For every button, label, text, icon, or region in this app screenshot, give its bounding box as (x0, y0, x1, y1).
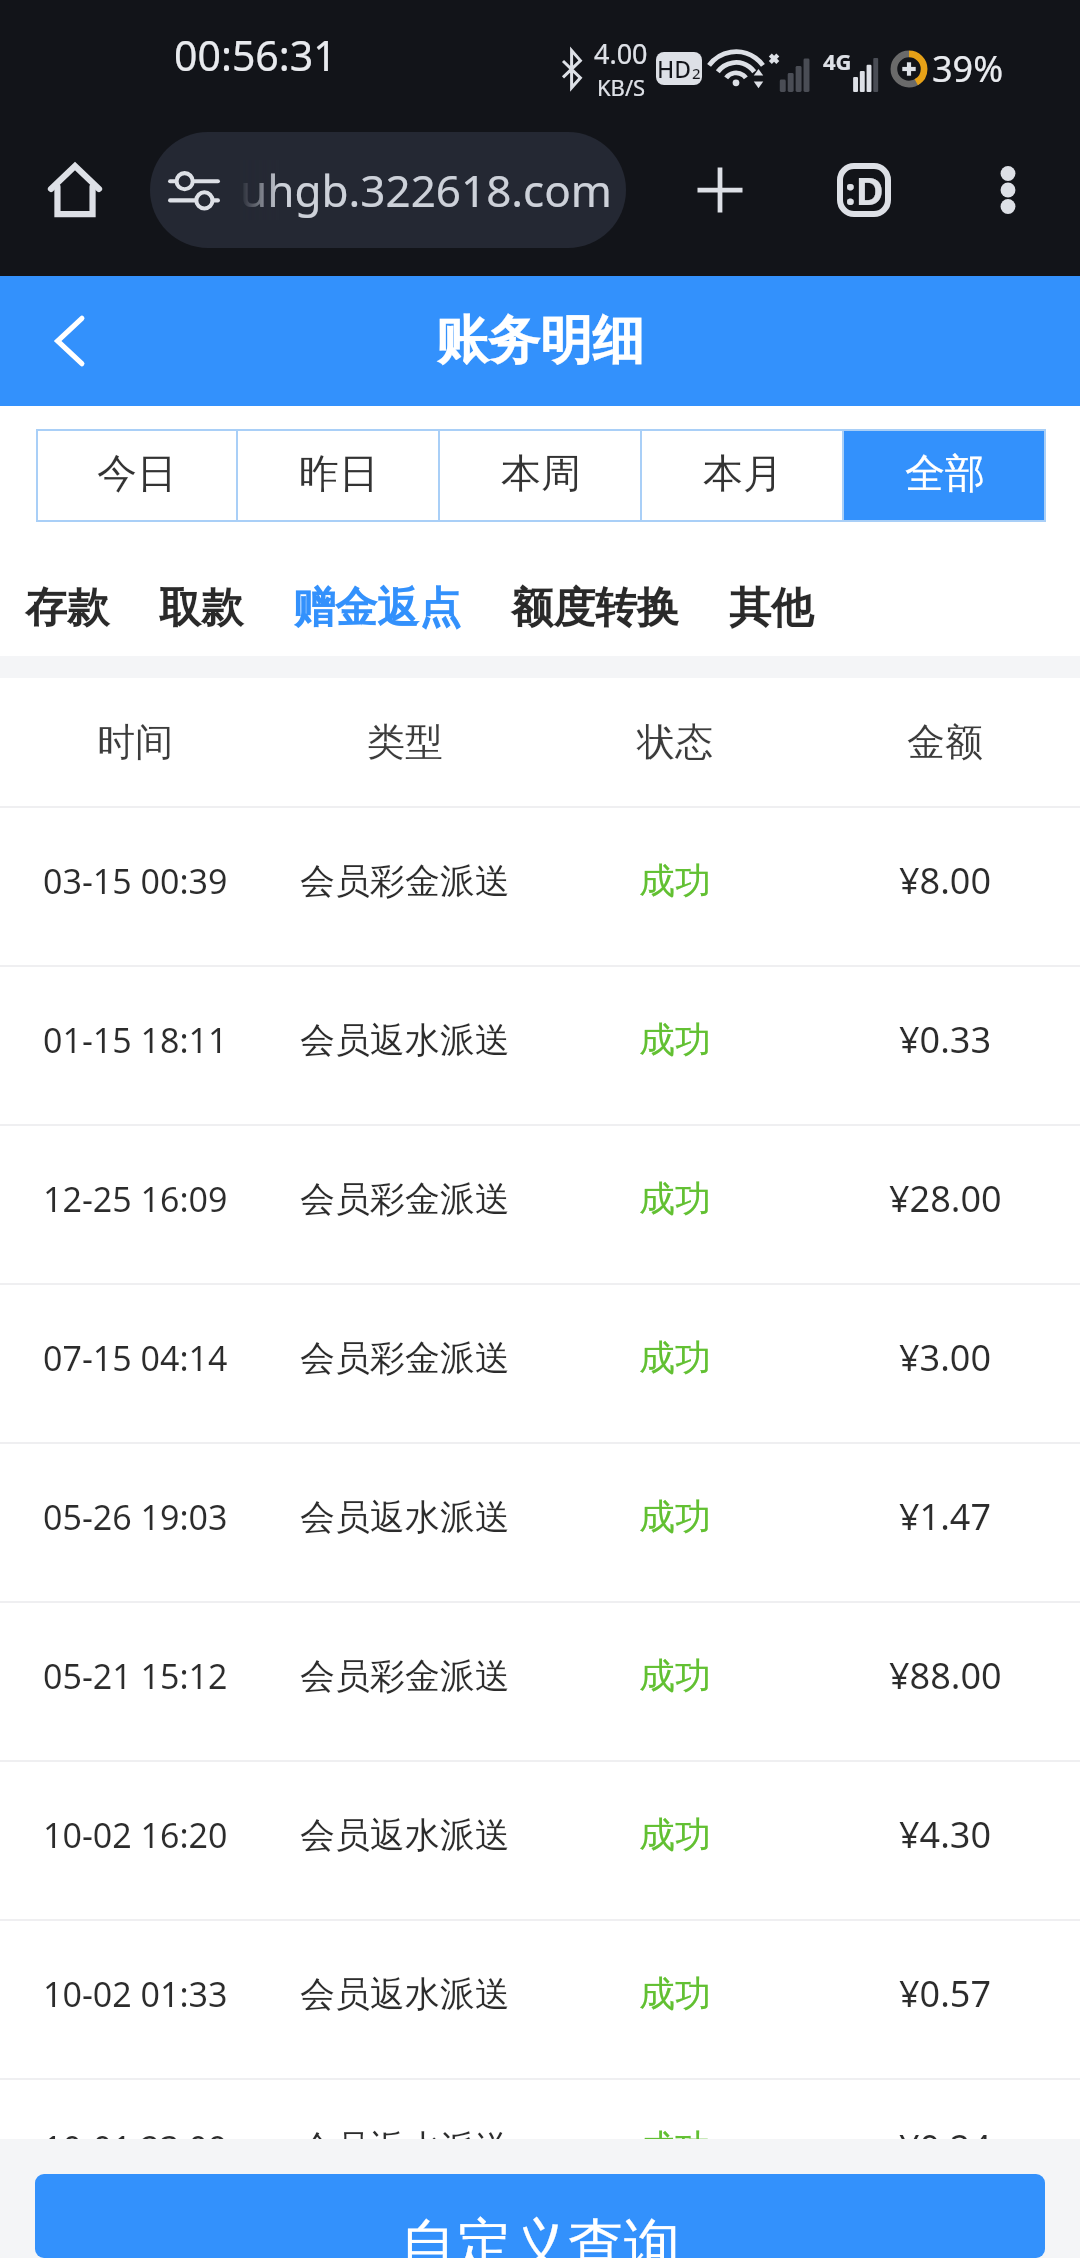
button[interactable]: uhgb.322618.com (150, 132, 626, 248)
button[interactable]: 额度转换 (486, 568, 704, 649)
staticText: 额度转换 (511, 582, 679, 635)
staticText: ¥4.30 (899, 1810, 992, 1859)
staticText: ¥1.47 (899, 1492, 992, 1541)
staticText: 成功 (639, 1812, 711, 1857)
staticText: 其他 (729, 582, 813, 635)
staticText: 今日 (97, 448, 177, 498)
button[interactable]: Home (0, 110, 150, 270)
button[interactable]: 赠金返点 (268, 568, 486, 649)
staticText: ¥0.57 (899, 1969, 992, 2018)
button[interactable]: 今日 (36, 429, 238, 522)
staticText: 39% (932, 44, 1004, 93)
staticText: 成功 (639, 1653, 711, 1698)
staticText: 10-02 01:33 (43, 1971, 228, 2017)
staticText: HD (657, 53, 692, 84)
button[interactable]: 03-15 00:39 (0, 808, 1080, 965)
staticText: ¥28.00 (889, 1174, 1002, 1223)
staticText: 00:56:31 (174, 27, 337, 83)
staticText: 03-15 00:39 (43, 858, 228, 904)
staticText: 4G (823, 46, 852, 76)
staticText: 10-01 23:09 (43, 2125, 228, 2171)
staticText: 10-02 16:20 (43, 1812, 228, 1858)
staticText: KB/S (597, 72, 646, 102)
staticText: 会员彩金派送 (300, 1654, 510, 1698)
staticText: uhgb.322618.com (240, 160, 612, 220)
staticText: 4.00 (594, 35, 648, 72)
staticText: 会员返水派送 (300, 1018, 510, 1062)
staticText: 全部 (905, 448, 985, 498)
button[interactable]: 10-01 23:09 (0, 2080, 1080, 2237)
staticText: 07-15 04:14 (43, 1335, 228, 1381)
staticText: 时间 (97, 718, 173, 766)
staticText: 赠金返点 (293, 582, 461, 635)
button[interactable]: 05-26 19:03 (0, 1444, 1080, 1601)
staticText: 取款 (159, 582, 243, 635)
staticText: 本月 (703, 448, 783, 498)
staticText: 05-26 19:03 (43, 1494, 228, 1540)
staticText: 会员彩金派送 (300, 1177, 510, 1221)
button[interactable]: 05-21 15:12 (0, 1603, 1080, 1760)
staticText: 会员彩金派送 (300, 1336, 510, 1380)
staticText: 会员返水派送 (300, 2126, 510, 2170)
staticText: 存款 (25, 582, 109, 635)
staticText: 类型 (367, 718, 443, 766)
staticText: 状态 (637, 718, 713, 766)
button[interactable]: 07-15 04:14 (0, 1285, 1080, 1442)
staticText: 成功 (639, 1335, 711, 1380)
button[interactable]: 本月 (642, 429, 844, 522)
staticText: ¥8.00 (899, 856, 992, 905)
staticText: ¥0.33 (899, 1015, 992, 1064)
button[interactable]: More options (936, 110, 1080, 270)
staticText: ¥3.00 (899, 1333, 992, 1382)
staticText: 05-21 15:12 (43, 1653, 228, 1699)
staticText: 2 (692, 63, 701, 83)
staticText: 成功 (639, 1017, 711, 1062)
staticText: 成功 (639, 1494, 711, 1539)
staticText: ¥0.24 (899, 2123, 992, 2172)
staticText: 会员返水派送 (300, 1495, 510, 1539)
button[interactable]: 10-02 16:20 (0, 1762, 1080, 1919)
staticText: 成功 (639, 1971, 711, 2016)
staticText: 01-15 18:11 (43, 1017, 228, 1063)
staticText: 成功 (639, 2125, 711, 2170)
button[interactable]: Back (22, 293, 118, 389)
staticText: 会员返水派送 (300, 1972, 510, 2016)
button[interactable]: 本周 (440, 429, 642, 522)
button[interactable]: Tabs (792, 110, 936, 270)
staticText: :D (845, 164, 884, 216)
button[interactable]: New tab (648, 110, 792, 270)
button[interactable]: 其他 (704, 568, 838, 649)
button[interactable]: 10-02 01:33 (0, 1921, 1080, 2078)
button[interactable]: 01-15 18:11 (0, 967, 1080, 1124)
button[interactable]: 全部 (844, 429, 1046, 522)
staticText: 会员彩金派送 (300, 859, 510, 903)
staticText: 本周 (501, 448, 581, 498)
button[interactable]: 12-25 16:09 (0, 1126, 1080, 1283)
button[interactable]: 存款 (0, 568, 134, 649)
staticText: 金额 (907, 718, 983, 766)
button[interactable]: 昨日 (238, 429, 440, 522)
button[interactable]: 自定义查询 (35, 2174, 1045, 2258)
staticText: 昨日 (299, 448, 379, 498)
staticText: 成功 (639, 858, 711, 903)
staticText: 12-25 16:09 (43, 1176, 228, 1222)
staticText: 账务明细 (436, 308, 644, 374)
staticText: ¥88.00 (889, 1651, 1002, 1700)
button[interactable]: 取款 (134, 568, 268, 649)
staticText: 成功 (639, 1176, 711, 1221)
staticText: 自定义查询 (400, 2210, 680, 2258)
staticText: 会员返水派送 (300, 1813, 510, 1857)
